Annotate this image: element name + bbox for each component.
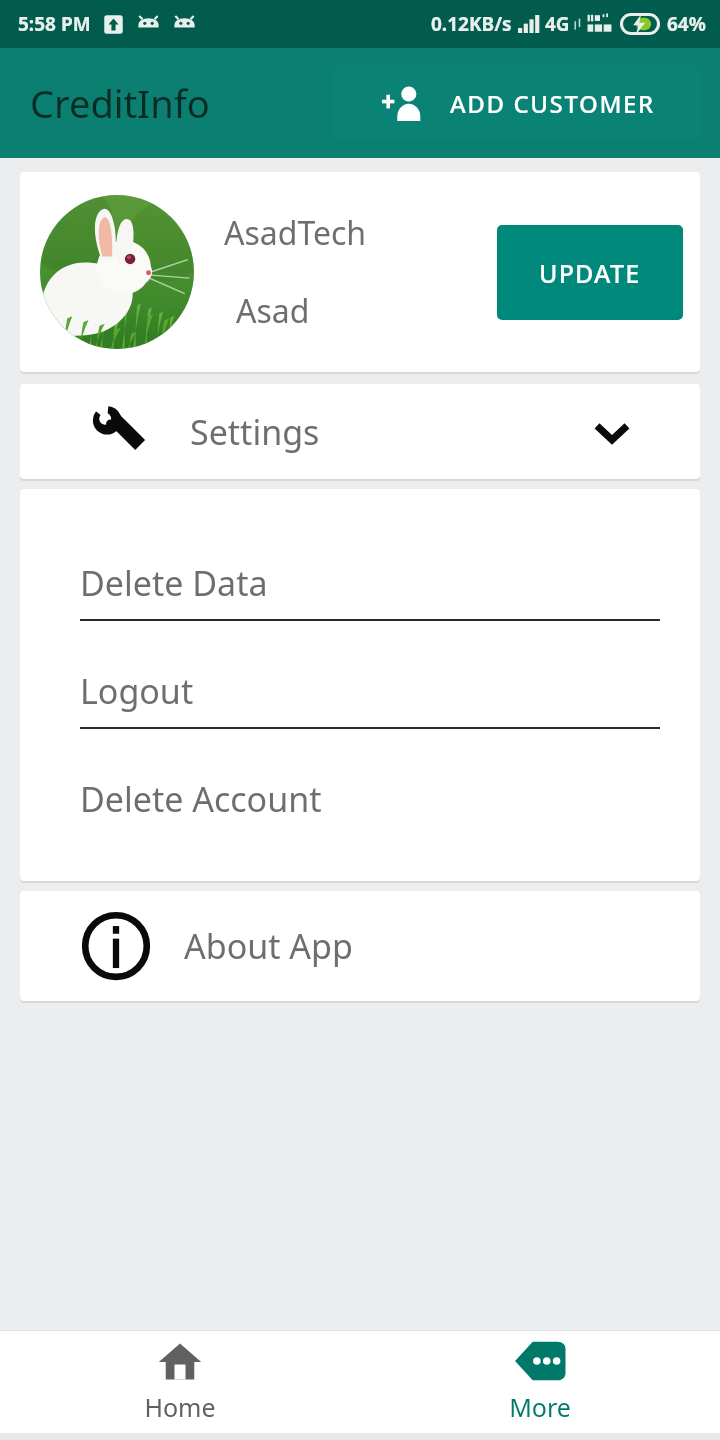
staticText: AsadTech — [224, 211, 367, 255]
button[interactable]: UPDATE — [497, 225, 683, 320]
button[interactable]: Logout — [20, 655, 700, 763]
staticText: Delete Account — [80, 776, 322, 822]
staticText: 5:58 PM — [18, 11, 91, 37]
button[interactable]: About App — [0, 891, 720, 1001]
button[interactable]: ADD CUSTOMER — [332, 66, 702, 140]
staticText: CreditInfo — [30, 77, 210, 129]
staticText: About App — [184, 923, 353, 969]
staticText: Settings — [190, 409, 590, 455]
button[interactable]: More — [360, 1330, 720, 1433]
staticText: Logout — [80, 668, 194, 714]
staticText: Asad — [236, 289, 310, 333]
staticText: 64% — [667, 11, 706, 37]
staticText: 0.12KB/s — [431, 11, 512, 37]
button[interactable]: Delete Account — [20, 763, 700, 835]
button[interactable]: Settings — [0, 384, 720, 479]
button[interactable]: AsadTech — [0, 172, 720, 372]
staticText: UPDATE — [539, 256, 641, 290]
staticText: ADD CUSTOMER — [450, 87, 655, 120]
other: Collapse settings — [590, 410, 634, 454]
staticText: More — [509, 1390, 571, 1424]
staticText: 4G — [545, 11, 570, 37]
staticText: Delete Data — [80, 560, 268, 606]
button[interactable]: Home — [0, 1330, 360, 1433]
staticText: Home — [144, 1390, 216, 1424]
button[interactable]: Delete Data — [20, 547, 700, 655]
